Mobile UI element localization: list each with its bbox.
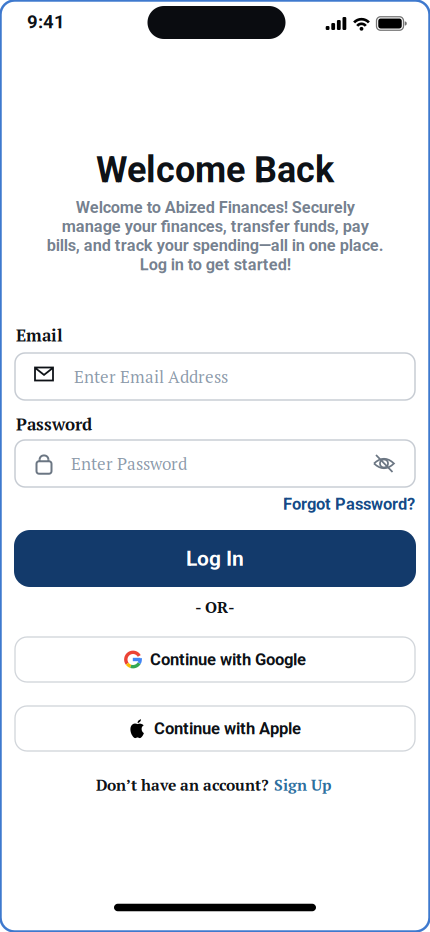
staticText: Log In (186, 546, 244, 571)
button[interactable]: Log In (14, 530, 416, 587)
staticText: Continue with Apple (154, 719, 301, 738)
button[interactable]: Continue with Apple (15, 706, 415, 751)
staticText: Forgot Password? (283, 494, 415, 514)
button[interactable]: Continue with Google (15, 637, 415, 682)
button[interactable]: Don’t have an account? (96, 775, 332, 795)
staticText: Welcome Back (96, 149, 334, 191)
button[interactable]: Enter Email Address (15, 353, 415, 400)
staticText: Continue with Google (150, 650, 306, 669)
staticText: Password (16, 413, 92, 435)
staticText: - OR- (195, 596, 235, 618)
staticText: Enter Password (71, 452, 187, 475)
staticText: Enter Email Address (74, 365, 228, 388)
staticText: Sign Up (274, 775, 332, 795)
staticText: Welcome to Abized Finances! Securely man… (46, 198, 383, 274)
button[interactable]: Enter Password (15, 440, 415, 487)
staticText: Don’t have an account? (96, 775, 269, 795)
staticText: Email (16, 324, 63, 346)
staticText: 9:41 (27, 11, 65, 33)
button[interactable]: Forgot Password? (0, 494, 430, 514)
